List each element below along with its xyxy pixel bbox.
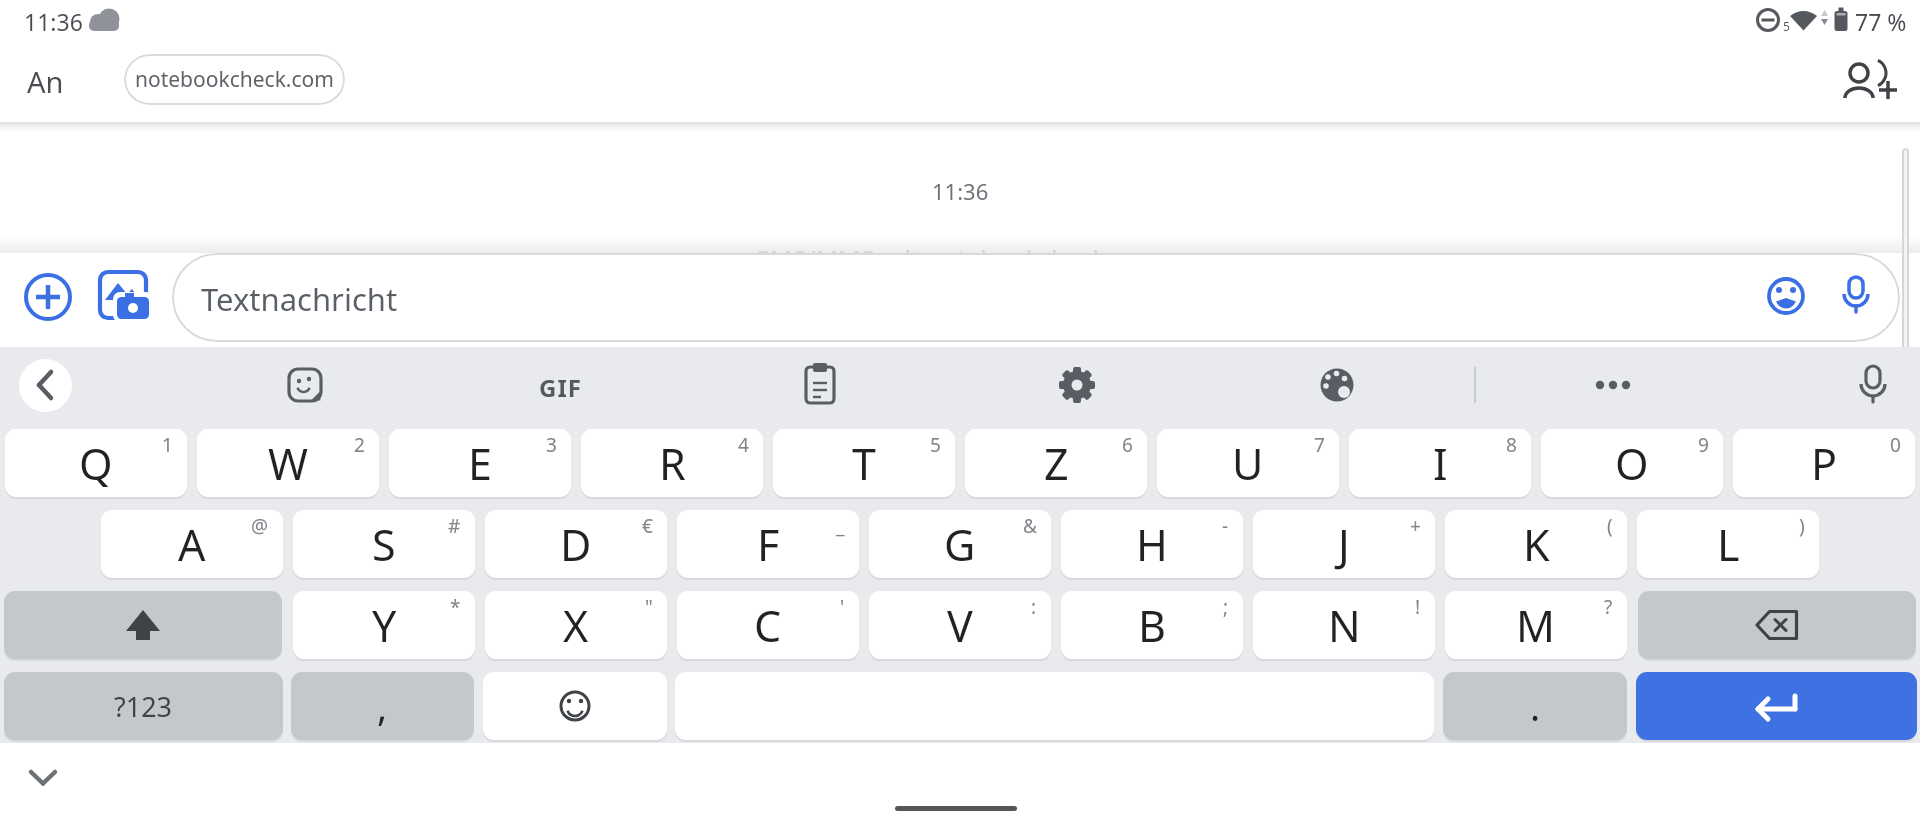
staticText: ; — [1223, 594, 1229, 620]
staticText: Y — [372, 596, 397, 655]
staticText: € — [642, 513, 653, 539]
staticText: T — [852, 434, 876, 493]
staticText: 5 — [930, 432, 941, 458]
staticText: , — [377, 680, 388, 732]
staticText: G — [944, 515, 976, 574]
staticText: V — [947, 596, 973, 655]
staticText: 3 — [546, 432, 557, 458]
staticText: * — [450, 594, 461, 620]
staticText: 0 — [1890, 432, 1901, 458]
staticText: + — [1410, 513, 1421, 539]
staticText: I — [1433, 434, 1448, 493]
staticText: Textnachricht — [201, 278, 398, 320]
staticText: SMS/MMS mit notebookcheck.com — [756, 242, 1164, 276]
staticText: 6 — [1122, 432, 1133, 458]
staticText: L — [1717, 515, 1740, 574]
staticText: " — [645, 594, 653, 620]
staticText: ?123 — [114, 688, 173, 725]
staticText: 8 — [1506, 432, 1517, 458]
staticText: # — [448, 513, 461, 539]
staticText: . — [1530, 680, 1541, 732]
staticText: S — [372, 515, 396, 574]
staticText: H — [1136, 515, 1168, 574]
staticText: notebookcheck.com — [135, 65, 334, 94]
staticText: @ — [251, 513, 269, 539]
staticText: A — [178, 515, 206, 574]
staticText: E — [468, 434, 492, 493]
staticText: ( — [1607, 513, 1613, 539]
staticText: U — [1232, 434, 1264, 493]
staticText: D — [560, 515, 592, 574]
staticText: 2 — [354, 432, 365, 458]
staticText: B — [1138, 596, 1166, 655]
staticText: N — [1328, 596, 1361, 655]
staticText: K — [1523, 515, 1550, 574]
staticText: X — [563, 596, 589, 655]
staticText: 4 — [738, 432, 749, 458]
staticText: ! — [1415, 594, 1421, 620]
staticText: 11:36 — [932, 176, 989, 206]
staticText: An — [27, 62, 64, 101]
staticText: 77 % — [1855, 6, 1907, 37]
staticText: ? — [1604, 594, 1613, 620]
staticText: M — [1516, 596, 1556, 655]
staticText: 1 — [162, 432, 173, 458]
staticText: 9 — [1698, 432, 1709, 458]
staticText: Q — [79, 434, 113, 493]
staticText: : — [1031, 594, 1037, 620]
staticText: F — [757, 515, 780, 574]
staticText: - — [1222, 513, 1229, 539]
staticText: 7 — [1314, 432, 1325, 458]
staticText: ' — [840, 594, 845, 620]
staticText: W — [268, 434, 308, 493]
staticText: 11:36 — [24, 6, 83, 37]
staticText: J — [1338, 515, 1350, 574]
staticText: R — [659, 434, 686, 493]
staticText: C — [754, 596, 782, 655]
staticText: O — [1615, 434, 1649, 493]
staticText: Z — [1044, 434, 1069, 493]
staticText: _ — [836, 513, 845, 539]
staticText: P — [1811, 434, 1838, 493]
staticText: ) — [1799, 513, 1805, 539]
staticText: GIF — [539, 371, 582, 399]
staticText: 5 — [1783, 18, 1790, 34]
staticText: & — [1023, 513, 1037, 539]
